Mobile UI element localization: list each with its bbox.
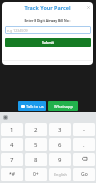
staticText: Submit: [42, 40, 55, 45]
button[interactable]: 6: [49, 138, 71, 151]
staticText: 1: [10, 126, 14, 134]
staticText: 5: [34, 141, 38, 149]
button[interactable]: e.g 1234509: [5, 26, 91, 34]
staticText: Go: [81, 171, 88, 178]
other: Switch keyboard: [4, 116, 7, 119]
button[interactable]: Submit: [5, 38, 91, 47]
staticText: Enter 8 Digit Airway Bill No :: [2, 18, 93, 22]
button[interactable]: *#: [1, 168, 23, 181]
staticText: 9: [58, 156, 62, 164]
button[interactable]: 0+: [25, 168, 47, 181]
button[interactable]: Talk to us: [18, 101, 46, 111]
staticText: Talk to us: [26, 104, 44, 109]
staticText: e.g 1234509: [7, 28, 28, 33]
button[interactable]: -: [73, 123, 95, 136]
staticText: 4: [10, 141, 14, 149]
staticText: 7: [10, 156, 14, 164]
button[interactable]: Delete: [73, 153, 95, 166]
staticText: 8: [34, 156, 38, 164]
button[interactable]: 4: [1, 138, 23, 151]
staticText: 3: [58, 126, 62, 134]
staticText: 0+: [33, 171, 39, 178]
button[interactable]: 7: [1, 153, 23, 166]
button[interactable]: 2: [25, 123, 47, 136]
staticText: .: [83, 141, 85, 149]
button[interactable]: Go: [73, 168, 95, 181]
staticText: Whatsapp: [54, 104, 73, 109]
button[interactable]: Whatsapp: [48, 101, 78, 111]
staticText: 6: [58, 141, 62, 149]
staticText: -: [83, 126, 85, 134]
button[interactable]: English: [49, 168, 71, 181]
staticText: *#: [9, 171, 15, 178]
button[interactable]: 3: [49, 123, 71, 136]
button[interactable]: 8: [25, 153, 47, 166]
button[interactable]: .: [73, 138, 95, 151]
staticText: Track Your Parcel: [2, 4, 93, 11]
button[interactable]: 9: [49, 153, 71, 166]
button[interactable]: Close: [86, 5, 91, 10]
staticText: English: [54, 172, 67, 177]
staticText: 2: [34, 126, 38, 134]
button[interactable]: 1: [1, 123, 23, 136]
button[interactable]: 5: [25, 138, 47, 151]
